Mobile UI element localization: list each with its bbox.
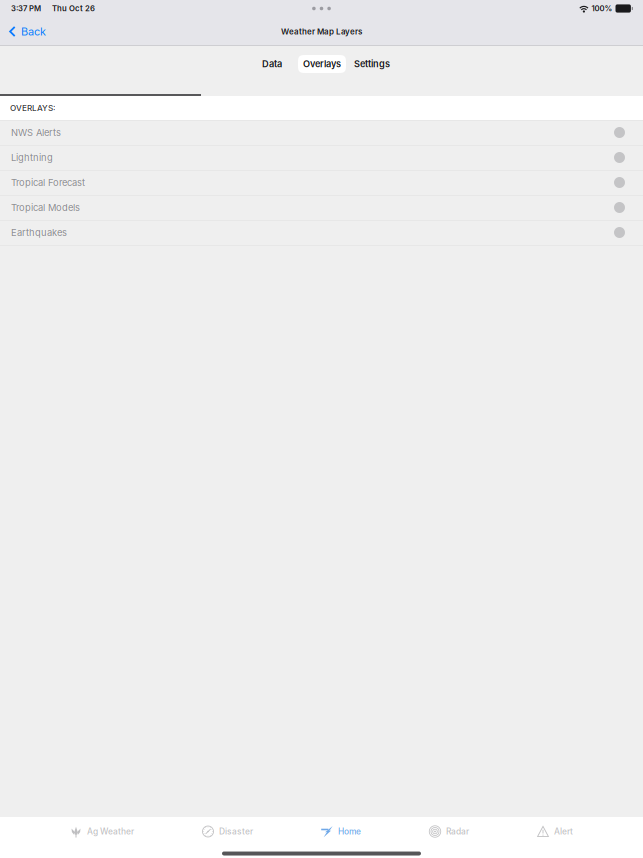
button[interactable]: NWS Alerts: [0, 120, 643, 145]
staticText: Overlays: [303, 58, 341, 69]
staticText: Lightning: [11, 152, 53, 163]
staticText: 3:37 PM: [11, 4, 41, 13]
button[interactable]: Tropical Forecast: [0, 170, 643, 195]
staticText: Ag Weather: [87, 826, 134, 837]
button[interactable]: Lightning: [0, 145, 643, 170]
staticText: OVERLAYS:: [10, 103, 55, 113]
staticText: NWS Alerts: [11, 127, 61, 138]
button[interactable]: Disaster: [202, 819, 253, 843]
button[interactable]: Settings: [349, 55, 395, 73]
button[interactable]: Tropical Models: [0, 195, 643, 220]
button[interactable]: Ag Weather: [70, 819, 134, 843]
staticText: Home: [338, 826, 361, 837]
staticText: 100%: [591, 4, 612, 13]
staticText: Earthquakes: [11, 227, 67, 238]
button[interactable]: Back: [0, 17, 56, 45]
button[interactable]: Data: [257, 55, 287, 73]
staticText: Thu Oct 26: [52, 4, 95, 13]
staticText: Tropical Models: [11, 202, 80, 213]
button[interactable]: Home: [321, 819, 361, 843]
button[interactable]: Earthquakes: [0, 220, 643, 245]
button[interactable]: Alert: [537, 819, 573, 843]
staticText: Weather Map Layers: [281, 27, 362, 36]
staticText: Tropical Forecast: [11, 177, 85, 188]
staticText: Radar: [446, 826, 469, 837]
staticText: Settings: [354, 58, 390, 69]
staticText: Alert: [554, 826, 573, 837]
staticText: Disaster: [219, 826, 253, 837]
staticText: Back: [21, 25, 46, 38]
button[interactable]: Overlays: [298, 55, 346, 73]
button[interactable]: Radar: [429, 819, 469, 843]
staticText: Data: [262, 58, 282, 69]
